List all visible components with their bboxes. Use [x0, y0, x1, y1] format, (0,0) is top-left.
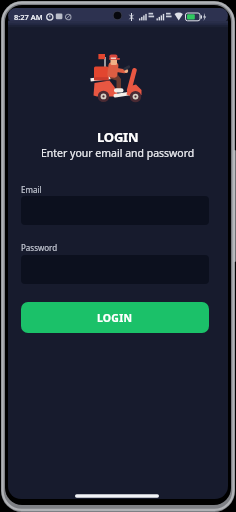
staticText: Email [21, 184, 42, 195]
staticText: Enter your email and password [41, 146, 195, 160]
staticText: LOGIN [97, 311, 133, 325]
button[interactable]: LOGIN [21, 302, 209, 333]
staticText: Password [21, 242, 58, 253]
staticText: 8:27 AM [14, 12, 43, 22]
staticText: LOGIN [97, 128, 139, 146]
